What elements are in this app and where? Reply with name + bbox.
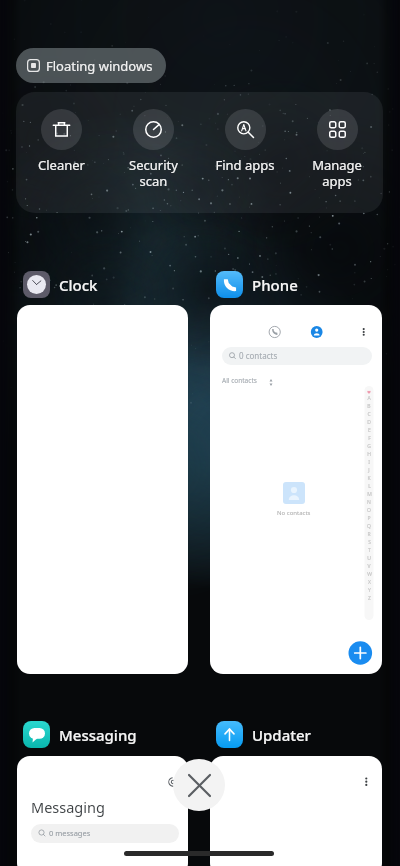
- staticText: P: [367, 515, 371, 522]
- button[interactable]: Find apps: [199, 92, 291, 174]
- staticText: Messaging: [59, 725, 137, 745]
- button[interactable]: [17, 305, 188, 674]
- staticText: V: [367, 563, 371, 570]
- staticText: Y: [368, 587, 371, 594]
- staticText: H: [367, 451, 371, 458]
- staticText: T: [368, 547, 371, 554]
- staticText: Floating windows: [46, 57, 153, 75]
- staticText: Q: [367, 523, 371, 530]
- staticText: D: [367, 419, 371, 426]
- staticText: U: [367, 555, 371, 562]
- staticText: Security scan: [129, 156, 178, 189]
- button[interactable]: Security scan: [107, 92, 199, 189]
- button[interactable]: [210, 756, 382, 866]
- staticText: X: [368, 579, 371, 586]
- staticText: B: [367, 403, 371, 410]
- staticText: L: [368, 483, 371, 490]
- staticText: Clock: [59, 275, 98, 295]
- staticText: G: [367, 443, 371, 450]
- staticText: O: [367, 507, 371, 514]
- button[interactable]: Floating windows: [16, 48, 166, 83]
- staticText: I: [368, 459, 370, 466]
- button[interactable]: Messaging: [17, 756, 188, 866]
- staticText: Messaging: [31, 797, 105, 817]
- button[interactable]: Clock: [23, 271, 98, 298]
- staticText: N: [367, 499, 371, 506]
- staticText: No contacts: [277, 509, 311, 517]
- button[interactable]: Phone: [216, 271, 298, 298]
- staticText: C: [367, 411, 371, 418]
- button[interactable]: 0 contacts: [210, 305, 382, 674]
- staticText: Z: [368, 595, 371, 602]
- staticText: Cleaner: [38, 156, 85, 174]
- button[interactable]: Manage apps: [291, 92, 383, 189]
- staticText: W: [367, 571, 372, 578]
- staticText: 0 contacts: [239, 350, 278, 361]
- staticText: 0 messages: [49, 828, 91, 838]
- staticText: F: [368, 435, 371, 442]
- staticText: Phone: [252, 275, 298, 295]
- button[interactable]: Cleaner: [16, 92, 107, 174]
- staticText: J: [368, 467, 370, 474]
- button[interactable]: Messaging: [23, 721, 137, 748]
- staticText: R: [367, 531, 371, 538]
- staticText: M: [367, 491, 372, 498]
- staticText: Find apps: [215, 156, 275, 174]
- staticText: Manage apps: [312, 156, 362, 189]
- staticText: E: [368, 427, 371, 434]
- staticText: K: [367, 475, 371, 482]
- staticText: All contacts: [222, 376, 257, 385]
- staticText: Updater: [252, 725, 311, 745]
- staticText: A: [367, 395, 371, 402]
- staticText: S: [368, 539, 371, 546]
- button[interactable]: Updater: [216, 721, 311, 748]
- button[interactable]: Clear all: [173, 759, 225, 811]
